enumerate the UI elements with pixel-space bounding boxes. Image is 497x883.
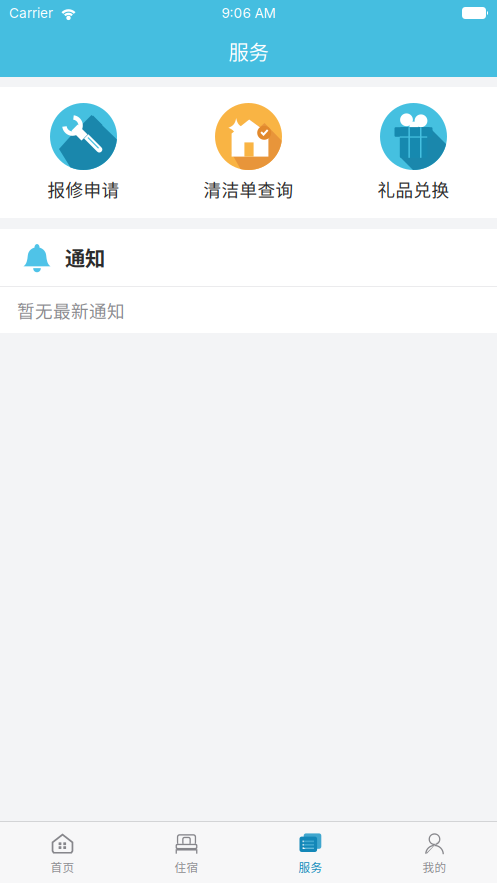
staticText: 报修申请 [47, 176, 119, 201]
staticText: 9:06 AM [221, 5, 275, 21]
button[interactable]: 清洁单查询 [166, 87, 331, 218]
button[interactable]: 报修申请 [1, 87, 166, 218]
button[interactable]: 通知 [0, 229, 497, 286]
staticText: 暂无最新通知 [17, 297, 125, 323]
staticText: 我的 [422, 859, 446, 875]
staticText: Carrier [9, 5, 53, 21]
button[interactable]: 服务 [248, 822, 372, 883]
button[interactable]: 首页 [0, 822, 124, 883]
button[interactable]: 我的 [372, 822, 496, 883]
staticText: 服务 [228, 37, 268, 66]
button[interactable]: 住宿 [124, 822, 248, 883]
staticText: 礼品兑换 [377, 176, 449, 201]
staticText: 清洁单查询 [203, 176, 293, 201]
staticText: 住宿 [174, 859, 198, 875]
staticText: 首页 [50, 859, 74, 875]
button[interactable]: 礼品兑换 [331, 87, 496, 218]
staticText: 服务 [298, 859, 322, 875]
staticText: 通知 [65, 243, 105, 272]
